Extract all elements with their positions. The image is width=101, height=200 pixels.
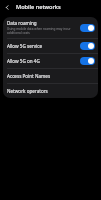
staticText: Allow 5G on 4G — [7, 58, 40, 64]
button[interactable]: Allow 5G on 4G — [3, 54, 98, 68]
staticText: Allow 5G service — [7, 43, 42, 49]
button[interactable]: Allow 5G service — [3, 39, 98, 53]
staticText: Network operators — [7, 88, 48, 94]
button[interactable]: Toggle — [80, 24, 95, 32]
staticText: Mobile networks — [16, 3, 61, 11]
button[interactable]: Network operators — [3, 84, 98, 98]
button[interactable]: Access Point Names — [3, 69, 98, 83]
button[interactable]: Data roaming — [3, 17, 98, 38]
staticText: Data roaming — [7, 20, 37, 26]
button[interactable]: Toggle — [80, 57, 95, 65]
button[interactable]: Toggle — [80, 42, 95, 50]
staticText: Access Point Names — [7, 73, 51, 79]
staticText: Using mobile data when roaming may incur… — [7, 27, 77, 35]
button[interactable]: Back — [2, 2, 13, 13]
